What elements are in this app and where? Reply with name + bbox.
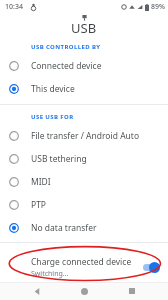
staticText: MIDI [31,176,51,188]
button[interactable]: Connected device [0,54,168,77]
other: Charge connected device toggle [143,262,160,273]
button[interactable]: Recents [121,282,143,300]
staticText: USB tethering [31,153,87,165]
button[interactable]: MIDI [0,170,168,193]
button[interactable]: This device [0,77,168,100]
staticText: Switching… [31,269,69,279]
staticText: 89% [151,2,165,12]
staticText: PTP [31,199,47,211]
staticText: USB CONTROLLED BY [31,43,101,51]
staticText: Charge connected device [31,256,132,268]
button[interactable]: Charge connected device [0,252,168,282]
button[interactable]: No data transfer [0,216,168,239]
button[interactable]: USB tethering [0,147,168,170]
button[interactable]: Home [73,282,95,300]
staticText: USB [71,19,97,37]
staticText: 10:34 [5,2,23,12]
staticText: This device [31,83,75,95]
staticText: Connected device [31,60,102,72]
staticText: File transfer / Android Auto [31,130,140,142]
staticText: USE USB FOR [31,113,74,121]
staticText: No data transfer [31,222,97,234]
button[interactable]: Back [26,282,48,300]
button[interactable]: File transfer / Android Auto [0,124,168,147]
button[interactable]: PTP [0,193,168,216]
